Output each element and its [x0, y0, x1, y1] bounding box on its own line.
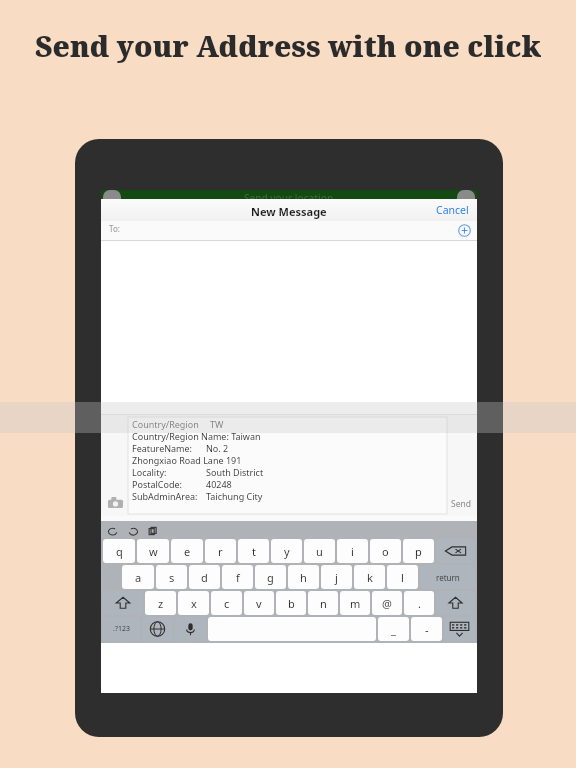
staticText: b	[288, 596, 295, 611]
staticText: -	[425, 622, 429, 637]
staticText: w	[149, 544, 158, 559]
button[interactable]: -	[411, 617, 442, 641]
button[interactable]: l	[387, 565, 418, 589]
staticText: y	[284, 544, 290, 559]
staticText: Country/Region Name: Taiwan	[132, 430, 261, 442]
staticText: u	[316, 544, 323, 559]
staticText: Send	[451, 498, 471, 510]
staticText: m	[350, 596, 361, 611]
staticText: To:	[109, 223, 120, 234]
button[interactable]: .	[404, 591, 434, 615]
button[interactable]: Shift	[436, 591, 475, 615]
staticText: PostalCode:	[132, 478, 182, 490]
button[interactable]: return	[420, 565, 475, 589]
button[interactable]: u	[304, 539, 335, 563]
button[interactable]: q	[103, 539, 135, 563]
button[interactable]: Cancel	[434, 201, 471, 219]
staticText: f	[236, 570, 240, 585]
button[interactable]: Undo	[107, 525, 119, 537]
button[interactable]: h	[288, 565, 319, 589]
button[interactable]: Backspace	[436, 539, 475, 563]
button[interactable]: w	[137, 539, 169, 563]
staticText: New Message	[251, 204, 327, 219]
button[interactable]: t	[238, 539, 269, 563]
staticText: n	[320, 596, 327, 611]
button[interactable]: z	[145, 591, 176, 615]
button[interactable]: y	[271, 539, 302, 563]
button[interactable]: x	[178, 591, 209, 615]
staticText: Locality:	[132, 466, 167, 478]
staticText: i	[351, 544, 354, 559]
staticText: c	[224, 596, 230, 611]
button[interactable]: k	[354, 565, 385, 589]
button[interactable]: m	[340, 591, 370, 615]
staticText: .?123	[113, 624, 130, 634]
button[interactable]: Shift	[103, 591, 143, 615]
button[interactable]: Country/Region Code:	[128, 417, 447, 514]
button[interactable]: v	[244, 591, 274, 615]
staticText: Zhongxiao Road Lane 191	[132, 454, 242, 466]
button[interactable]: f	[222, 565, 253, 589]
button[interactable]: g	[255, 565, 286, 589]
button[interactable]: Language	[142, 617, 173, 641]
staticText: r	[218, 544, 223, 559]
staticText: Cancel	[436, 203, 469, 217]
button[interactable]: e	[171, 539, 203, 563]
button[interactable]: c	[211, 591, 242, 615]
staticText: q	[116, 544, 123, 559]
staticText: j	[335, 570, 338, 585]
button[interactable]: b	[276, 591, 306, 615]
staticText: v	[256, 596, 262, 611]
staticText: p	[415, 544, 422, 559]
staticText: l	[401, 570, 404, 585]
button[interactable]: j	[321, 565, 352, 589]
button[interactable]: p	[403, 539, 434, 563]
staticText: k	[367, 570, 373, 585]
button[interactable]: n	[308, 591, 338, 615]
staticText: h	[300, 570, 307, 585]
staticText: return	[436, 572, 460, 583]
button[interactable]: Paste	[147, 525, 159, 537]
button[interactable]: Redo	[127, 525, 139, 537]
button[interactable]: To:	[101, 221, 477, 240]
staticText: FeatureName:	[132, 442, 193, 454]
button[interactable]: a	[122, 565, 154, 589]
staticText: South District	[206, 466, 264, 478]
staticText: t	[252, 544, 256, 559]
staticText: o	[382, 544, 389, 559]
button[interactable]: _	[378, 617, 409, 641]
button[interactable]: o	[370, 539, 401, 563]
staticText: No. 2	[206, 442, 229, 454]
staticText: z	[158, 596, 164, 611]
button[interactable]: @	[372, 591, 402, 615]
staticText: Send your Address with one click	[35, 26, 541, 65]
button[interactable]: Hide keyboard	[444, 617, 475, 641]
staticText: Country/Region Code:	[132, 418, 210, 430]
staticText: .	[418, 596, 421, 611]
button[interactable]: Dictate	[175, 617, 206, 641]
staticText: Taichung City	[206, 490, 263, 502]
staticText: TW	[210, 418, 224, 430]
staticText: Send your location	[244, 191, 334, 205]
staticText: s	[169, 570, 175, 585]
button[interactable]: Camera	[108, 497, 123, 509]
staticText: @	[382, 596, 392, 611]
button[interactable]: .?123	[103, 617, 140, 641]
button[interactable]: s	[156, 565, 187, 589]
staticText: SubAdminArea:	[132, 490, 198, 502]
staticText: e	[184, 544, 191, 559]
button[interactable]: r	[205, 539, 236, 563]
staticText: _	[391, 622, 396, 637]
staticText: a	[135, 570, 142, 585]
staticText: g	[267, 570, 274, 585]
staticText: d	[201, 570, 208, 585]
button[interactable]: i	[337, 539, 368, 563]
button[interactable]: Add contact	[458, 224, 471, 237]
staticText: x	[191, 596, 197, 611]
button[interactable]: d	[189, 565, 220, 589]
staticText: 40248	[206, 478, 232, 490]
button[interactable]: Send	[449, 496, 473, 512]
